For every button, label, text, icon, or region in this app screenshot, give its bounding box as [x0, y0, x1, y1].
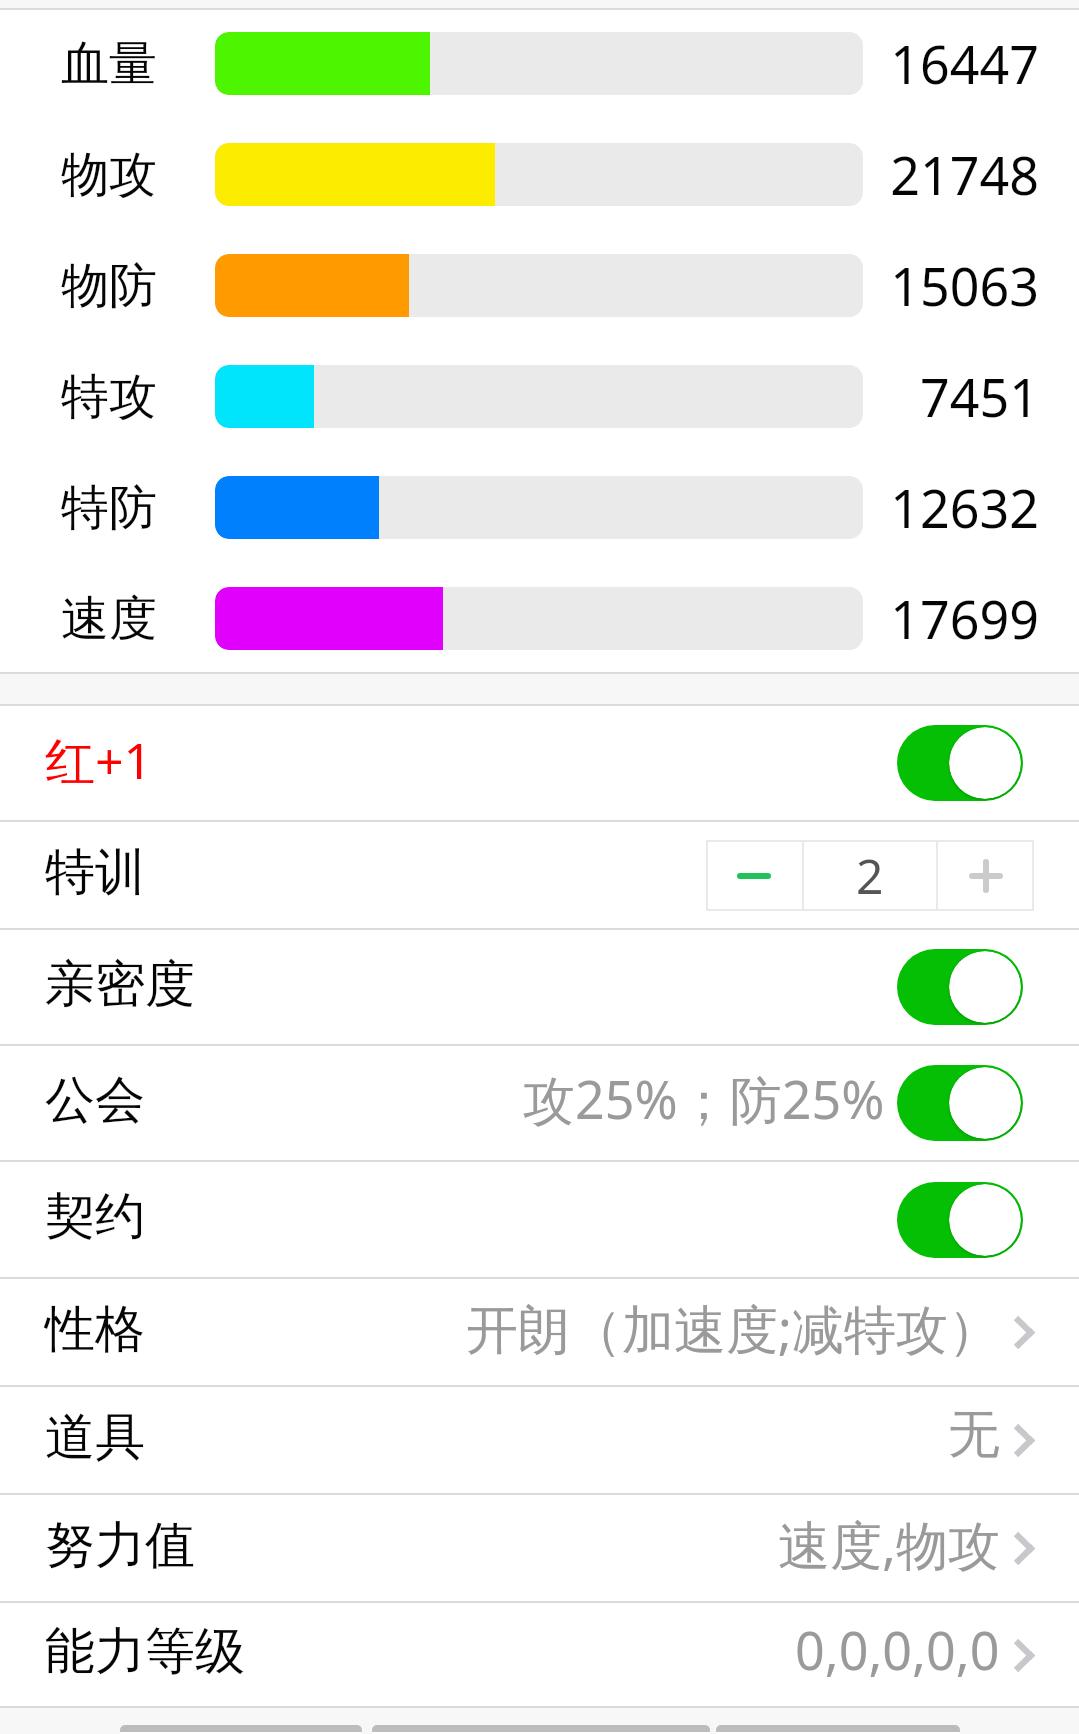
button[interactable]: 道具: [0, 1387, 1079, 1493]
staticText: 特攻: [61, 367, 161, 427]
button[interactable]: 公会: [0, 1046, 1079, 1160]
staticText: 能力等级: [45, 1620, 245, 1683]
button[interactable]: Toggle: [897, 949, 1023, 1025]
button[interactable]: Open: [1012, 1635, 1036, 1675]
staticText: 7451: [863, 361, 1039, 432]
button[interactable]: Action: [120, 1725, 362, 1734]
staticText: 契约: [45, 1185, 145, 1248]
button[interactable]: 契约: [0, 1162, 1079, 1277]
button[interactable]: Open: [1012, 1528, 1036, 1568]
staticText: 17699: [863, 583, 1039, 654]
button[interactable]: 亲密度: [0, 930, 1079, 1044]
staticText: 性格: [45, 1298, 145, 1361]
staticText: 16447: [863, 28, 1039, 99]
button[interactable]: Toggle: [897, 1065, 1023, 1141]
button[interactable]: 性格: [0, 1279, 1079, 1385]
button[interactable]: Action: [716, 1725, 960, 1734]
button[interactable]: Decrease: [706, 840, 802, 911]
button[interactable]: Increase: [938, 840, 1034, 911]
staticText: 物防: [61, 256, 161, 316]
button[interactable]: Action: [372, 1725, 710, 1734]
staticText: 15063: [863, 250, 1039, 321]
button[interactable]: 能力等级: [0, 1603, 1079, 1706]
staticText: 努力值: [45, 1514, 195, 1577]
button[interactable]: 努力值: [0, 1495, 1079, 1601]
button[interactable]: Open: [1012, 1420, 1036, 1460]
button[interactable]: Open: [1012, 1312, 1036, 1352]
button[interactable]: 红+1: [0, 706, 1079, 820]
staticText: 2: [856, 843, 884, 908]
staticText: 速度: [61, 589, 161, 649]
staticText: 无: [948, 1402, 1000, 1468]
staticText: 攻25%；防25%: [523, 1063, 885, 1134]
button[interactable]: Toggle: [897, 725, 1023, 801]
staticText: 12632: [863, 472, 1039, 543]
staticText: 血量: [61, 34, 161, 94]
button[interactable]: Toggle: [897, 1182, 1023, 1258]
staticText: 亲密度: [45, 953, 195, 1016]
staticText: 21748: [863, 139, 1039, 210]
staticText: 特训: [45, 841, 145, 904]
staticText: 特防: [61, 478, 161, 538]
staticText: 公会: [45, 1069, 145, 1132]
staticText: 道具: [45, 1406, 145, 1469]
button[interactable]: 特训: [0, 822, 1079, 928]
staticText: 0,0,0,0,0: [795, 1614, 1000, 1685]
staticText: 物攻: [61, 145, 161, 205]
staticText: 开朗（加速度;减特攻）: [466, 1292, 1000, 1363]
staticText: 速度,物攻: [778, 1508, 1000, 1579]
staticText: 红+1: [45, 726, 153, 794]
